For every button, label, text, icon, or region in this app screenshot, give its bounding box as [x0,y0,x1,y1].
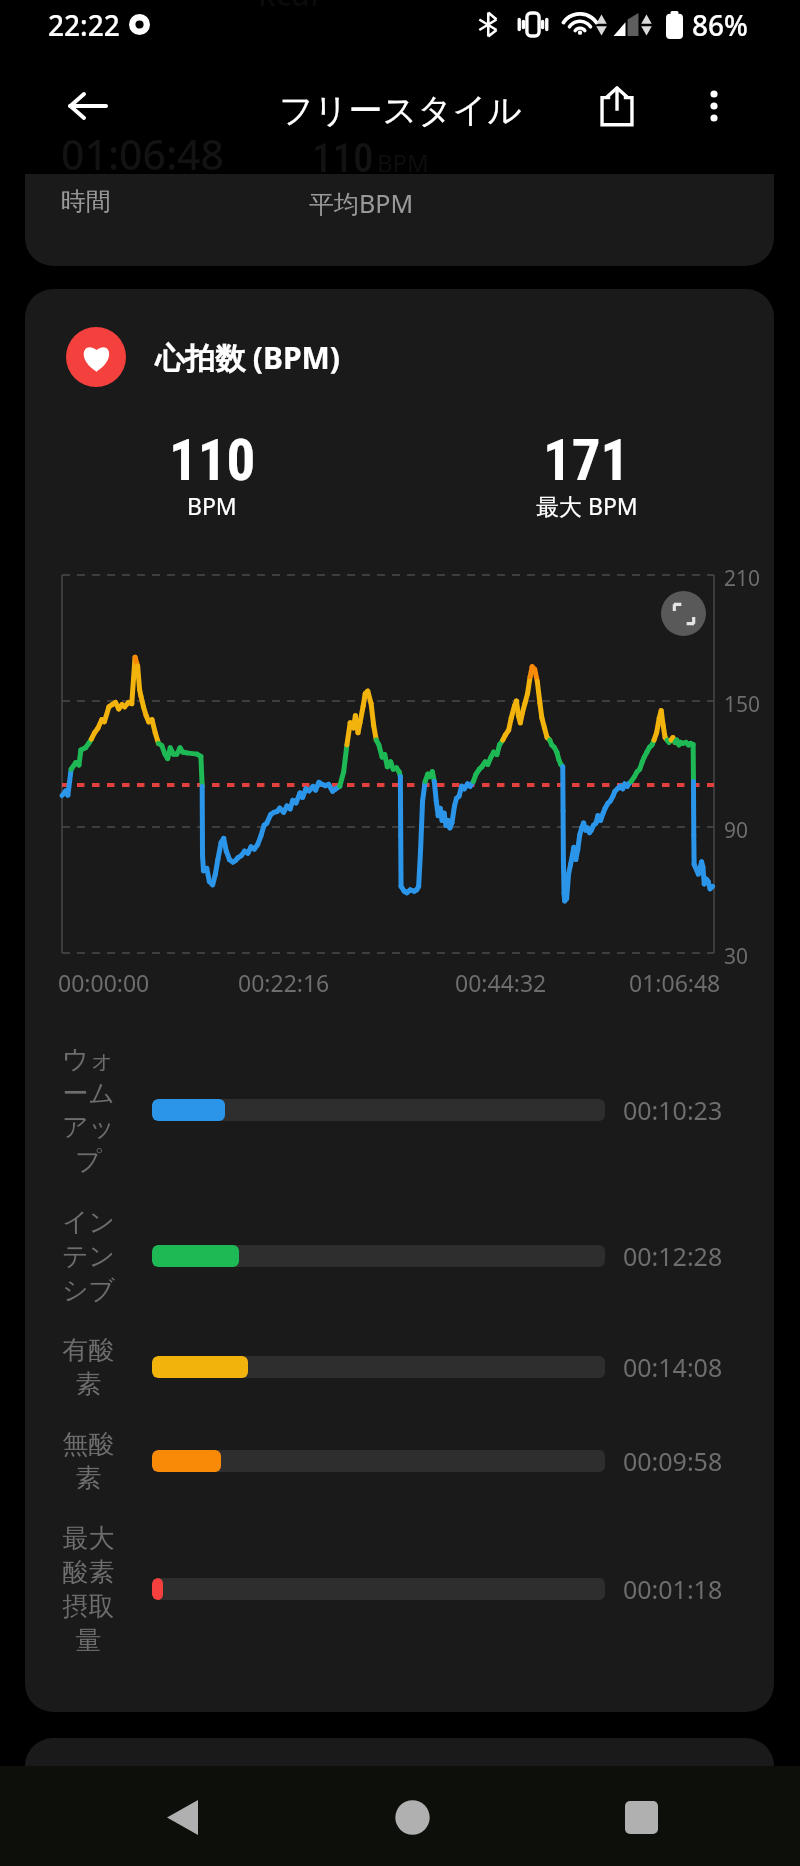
staticText: 110 [169,427,256,494]
staticText: 171 [543,427,630,494]
button[interactable]: Home [372,1777,452,1857]
staticText: 110 [312,134,374,182]
button[interactable]: 無酸素 [25,1371,774,1551]
staticText: BPM [377,146,429,179]
staticText: 最大酸素摂取量 [58,1522,119,1657]
staticText: 無酸素 [58,1428,119,1495]
staticText: 最大 BPM [536,490,638,521]
button[interactable]: 心拍数 (BPM) [25,289,774,1712]
staticText: 150 [724,690,761,719]
button[interactable]: Share [582,71,651,140]
button[interactable]: ウォームアップ [25,1020,774,1200]
staticText: 00:10:23 [623,1093,723,1127]
staticText: 時間 [61,186,111,217]
button[interactable]: 時間 [25,57,774,266]
staticText: 00:09:58 [623,1444,723,1478]
button[interactable]: Recent apps [601,1777,681,1857]
button[interactable]: 有酸素 [25,1277,774,1457]
staticText: ウォームアップ [58,1043,119,1178]
staticText: 00:00:00 [58,967,150,998]
staticText: BPM [187,490,237,521]
staticText: 210 [724,564,761,593]
staticText: 01:06:48 [629,967,721,998]
staticText: 22:22 [48,6,120,44]
staticText: 90 [724,816,749,845]
button[interactable]: 最大酸素摂取量 [25,1499,774,1679]
button[interactable]: インテンシブ [25,1166,774,1346]
staticText: フリースタイル [279,89,522,132]
staticText: 00:22:16 [238,967,330,998]
staticText: 00:12:28 [623,1239,723,1273]
staticText: 平均BPM [309,186,414,220]
staticText: 86% [692,6,748,44]
staticText: 心拍数 (BPM) [155,337,341,378]
staticText: 00:44:32 [455,967,547,998]
button[interactable]: Back [142,1777,222,1857]
staticText: インテンシブ [58,1206,119,1307]
staticText: 00:14:08 [623,1350,723,1384]
button[interactable]: More options [679,71,748,140]
button[interactable] [25,1738,774,1858]
staticText: 30 [724,942,749,971]
button[interactable]: Expand chart [661,591,706,636]
staticText: 01:06:48 [61,126,225,182]
staticText: kcal [258,0,319,16]
staticText: 有酸素 [58,1334,119,1401]
staticText: 00:01:18 [623,1572,723,1606]
button[interactable]: Back [53,71,122,140]
